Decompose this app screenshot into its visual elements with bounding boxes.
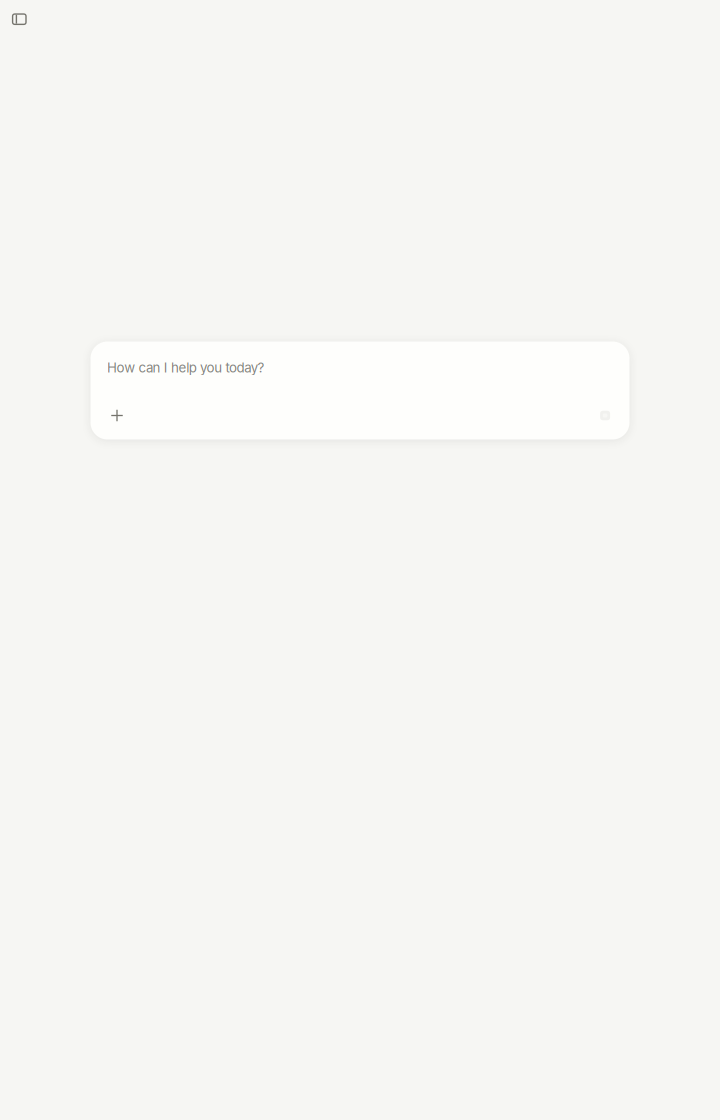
staticText: How can I help you today?: [107, 359, 264, 376]
button[interactable]: Toggle sidebar: [2, 2, 36, 36]
button[interactable]: Add attachment: [102, 400, 132, 430]
button[interactable]: Send message: [590, 400, 620, 430]
